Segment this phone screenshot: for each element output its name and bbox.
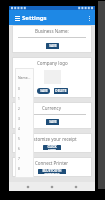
staticText: 0 (18, 87, 20, 91)
staticText: BLUETOOTH SETTINGS (38, 169, 66, 174)
staticText: 2 (18, 107, 20, 111)
button[interactable]: Back (25, 184, 31, 190)
button[interactable]: SAVE (46, 43, 59, 49)
staticText: 4 (18, 127, 20, 131)
staticText: SAVE (49, 120, 57, 124)
staticText: 3 (18, 117, 20, 121)
staticText: Business Name: (35, 28, 69, 34)
button[interactable]: 5 (18, 137, 34, 147)
button[interactable]: 3 (18, 117, 34, 127)
staticText: 5 (18, 137, 20, 141)
staticText: Customize your receipt (28, 136, 77, 142)
staticText: 7 (18, 157, 20, 161)
button[interactable]: Home (49, 184, 55, 190)
button[interactable]: 0 (18, 87, 34, 97)
button[interactable]: SAVE (37, 88, 50, 94)
button[interactable]: DELETE (54, 88, 68, 94)
staticText: Company logo (37, 60, 68, 66)
button[interactable]: 2 (18, 107, 34, 117)
staticText: 6 (18, 147, 20, 151)
button[interactable]: 1 (18, 97, 34, 107)
button[interactable]: More options (84, 13, 94, 23)
staticText: Connect Printer (35, 160, 69, 166)
button[interactable]: 6 (18, 147, 34, 157)
button[interactable]: 4 (18, 127, 34, 137)
staticText: Settings (22, 14, 47, 22)
staticText: SAVE (40, 89, 48, 93)
button[interactable]: Open navigation menu (12, 13, 22, 23)
button[interactable]: BLUETOOTH SETTINGS (38, 169, 66, 174)
staticText: 8 (18, 167, 20, 171)
button[interactable]: SAVE (46, 119, 59, 125)
staticText: CLICK HERE (43, 145, 61, 150)
staticText: Name... (18, 75, 31, 80)
button[interactable]: CLICK HERE (43, 145, 61, 150)
button[interactable]: 7 (18, 157, 34, 167)
staticText: DELETE (55, 89, 67, 93)
button[interactable]: Recents (73, 184, 79, 190)
button[interactable]: 8 (18, 167, 34, 177)
staticText: SAVE (49, 44, 57, 48)
staticText: Currency (42, 105, 62, 111)
staticText: 1 (18, 97, 20, 101)
